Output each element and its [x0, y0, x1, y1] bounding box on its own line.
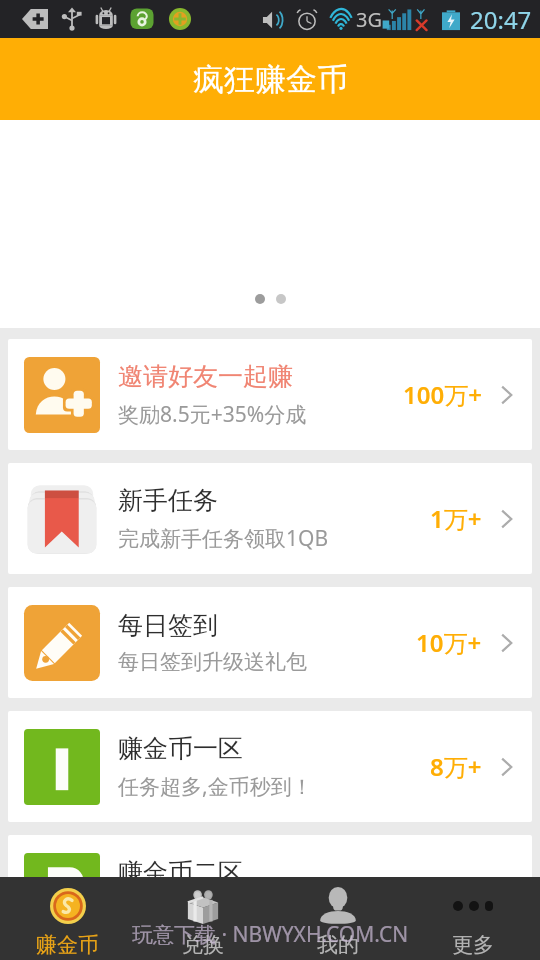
button[interactable]: 赚金币二区	[8, 835, 532, 946]
button[interactable]: Page 2	[276, 294, 286, 304]
button[interactable]: 新手任务	[8, 463, 532, 574]
staticText: 10万+	[416, 626, 482, 659]
staticText: 疯狂赚金币	[193, 60, 348, 99]
staticText: 任务超多,金币秒到！	[118, 896, 313, 925]
staticText: 赚金币	[36, 932, 99, 958]
staticText: 1万+	[430, 502, 482, 535]
staticText: 任务超多,金币秒到！	[118, 772, 313, 801]
button[interactable]: 每日签到	[8, 587, 532, 698]
staticText: 新手任务	[118, 485, 218, 516]
staticText: 完成新手任务领取1QB	[118, 524, 329, 553]
button[interactable]: 赚金币	[0, 877, 135, 960]
staticText: 赚金币一区	[118, 733, 243, 764]
staticText: 兑换	[182, 932, 224, 958]
staticText: 奖励8.5元+35%分成	[118, 400, 307, 429]
button[interactable]: 更多	[405, 877, 540, 960]
staticText: 我的	[317, 932, 359, 958]
button[interactable]: 赚金币一区	[8, 711, 532, 822]
staticText: 每日签到升级送礼包	[118, 649, 307, 675]
button[interactable]: Page 1	[255, 294, 265, 304]
staticText: 赚金币二区	[118, 857, 243, 888]
staticText: 20:47	[470, 3, 532, 36]
button[interactable]: 我的	[270, 877, 405, 960]
staticText: 更多	[452, 932, 494, 958]
staticText: 8万+	[430, 750, 482, 783]
staticText: 邀请好友一起赚	[118, 361, 293, 392]
staticText: 100万+	[403, 378, 482, 411]
staticText: 5万+	[430, 874, 482, 907]
button[interactable]: 兑换	[135, 877, 270, 960]
staticText: 玩意下载 · NBWYXH.COM.CN	[132, 920, 409, 949]
staticText: 3G	[356, 6, 382, 33]
button[interactable]: 邀请好友一起赚	[8, 339, 532, 450]
staticText: 每日签到	[118, 610, 218, 641]
